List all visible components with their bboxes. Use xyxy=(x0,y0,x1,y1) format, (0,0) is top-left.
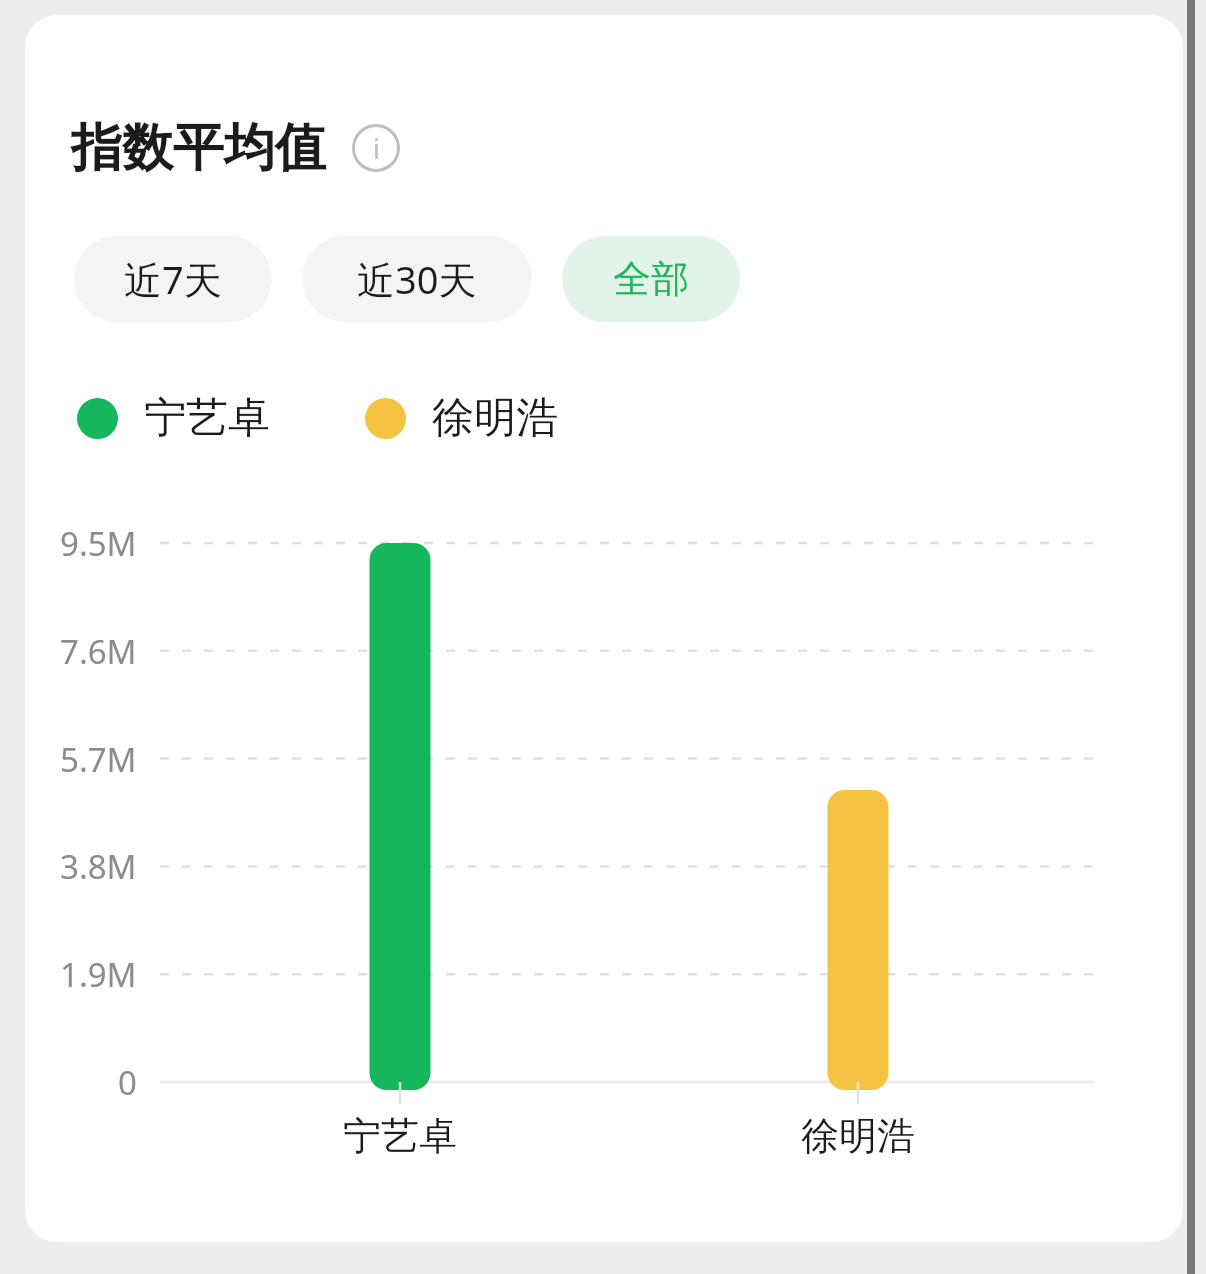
staticText: 徐明浩 xyxy=(801,1112,915,1160)
button[interactable]: 近7天 xyxy=(74,236,272,322)
button[interactable]: 近30天 xyxy=(302,236,532,322)
staticText: 5.7M xyxy=(60,737,137,782)
staticText: 7.6M xyxy=(60,629,137,674)
staticText: i xyxy=(373,130,380,167)
staticText: 宁艺卓 xyxy=(343,1112,457,1160)
staticText: 宁艺卓 xyxy=(144,392,270,445)
staticText: 近7天 xyxy=(124,253,222,305)
staticText: 9.5M xyxy=(60,521,137,566)
staticText: 徐明浩 xyxy=(432,392,558,445)
staticText: 3.8M xyxy=(60,844,137,889)
button[interactable]: 徐明浩 xyxy=(365,392,558,445)
staticText: 近30天 xyxy=(357,253,477,305)
button[interactable]: 全部 xyxy=(562,236,740,322)
staticText: 1.9M xyxy=(60,952,137,997)
staticText: 指数平均值 xyxy=(71,116,326,180)
button[interactable]: 宁艺卓 xyxy=(77,392,270,445)
staticText: 0 xyxy=(118,1060,137,1105)
button[interactable]: 说明 xyxy=(352,124,400,172)
staticText: 全部 xyxy=(613,255,689,303)
